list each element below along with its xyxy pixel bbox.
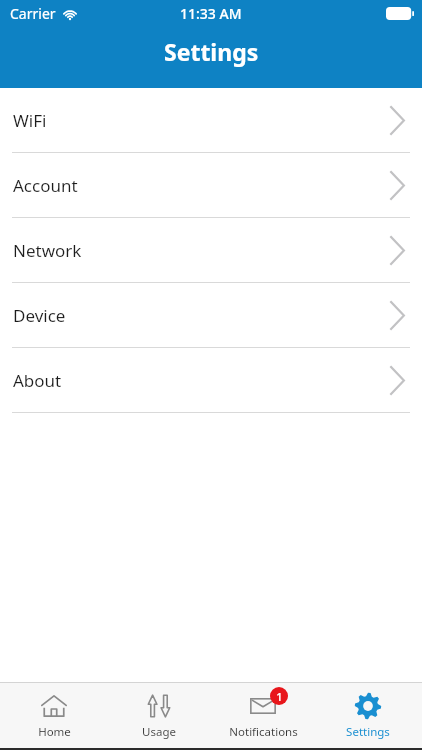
button[interactable]: WiFi [0, 88, 422, 153]
button[interactable]: Account [0, 153, 422, 218]
staticText: Network [13, 239, 82, 262]
staticText: Home [38, 724, 71, 740]
staticText: 11:33 AM [180, 4, 242, 23]
staticText: Settings [346, 724, 390, 740]
staticText: About [13, 369, 62, 392]
button[interactable]: Network [0, 218, 422, 283]
staticText: Carrier [10, 4, 56, 23]
button[interactable]: Settings [318, 691, 418, 740]
staticText: Account [13, 174, 78, 197]
staticText: Usage [142, 724, 176, 740]
staticText: Notifications [229, 724, 298, 740]
button[interactable]: Device [0, 283, 422, 348]
button[interactable]: Usage [109, 691, 209, 740]
staticText: WiFi [13, 109, 47, 132]
button[interactable]: Home [4, 691, 104, 740]
staticText: 1 [276, 689, 283, 704]
button[interactable]: About [0, 348, 422, 413]
staticText: Device [13, 304, 66, 327]
button[interactable]: Notifications [213, 691, 313, 740]
staticText: Settings [164, 36, 259, 67]
